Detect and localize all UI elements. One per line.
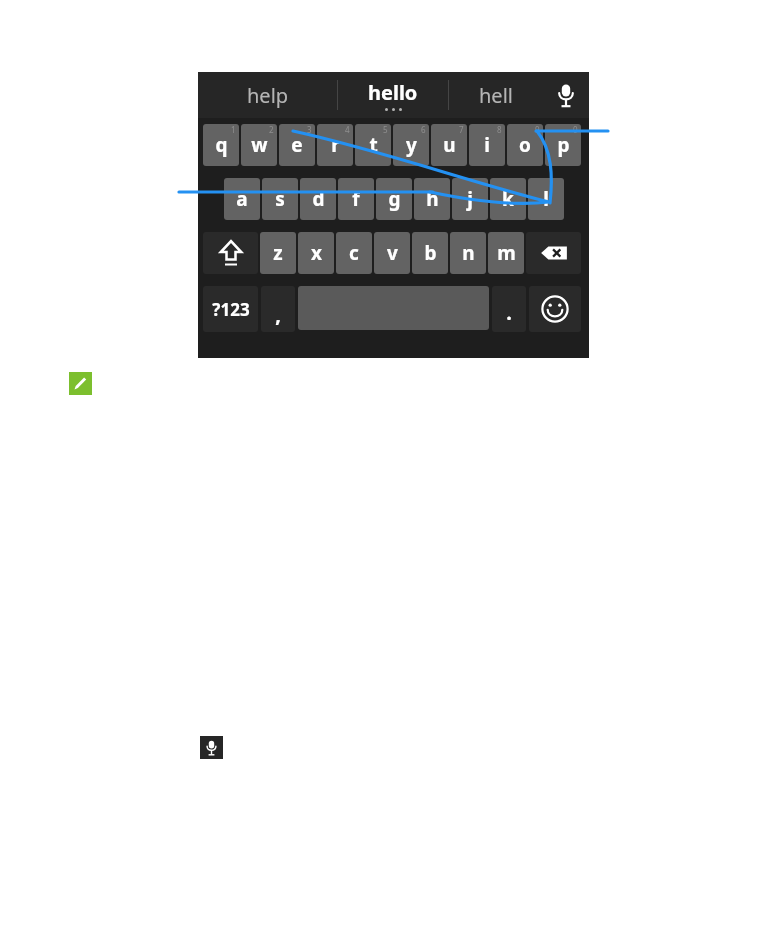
- staticText: n: [462, 240, 475, 266]
- button[interactable]: m: [488, 232, 524, 274]
- button[interactable]: hello: [338, 72, 448, 118]
- staticText: 1: [231, 124, 236, 135]
- staticText: h: [426, 186, 439, 212]
- button[interactable]: r: [317, 124, 353, 166]
- staticText: b: [424, 240, 437, 266]
- staticText: z: [273, 240, 283, 266]
- staticText: hell: [479, 82, 513, 109]
- button[interactable]: o: [507, 124, 543, 166]
- button[interactable]: Voice input: [200, 736, 223, 759]
- button[interactable]: .: [492, 286, 526, 332]
- button[interactable]: n: [450, 232, 486, 274]
- staticText: 9: [535, 124, 540, 135]
- button[interactable]: h: [414, 178, 450, 220]
- button[interactable]: y: [393, 124, 429, 166]
- staticText: v: [387, 240, 398, 266]
- staticText: hello: [368, 79, 418, 106]
- staticText: ,: [275, 301, 281, 328]
- button[interactable]: x: [298, 232, 334, 274]
- button[interactable]: ?123: [203, 286, 258, 332]
- button[interactable]: a: [224, 178, 260, 220]
- staticText: o: [519, 132, 531, 158]
- button[interactable]: Emoji: [529, 286, 581, 332]
- button[interactable]: f: [338, 178, 374, 220]
- staticText: s: [275, 186, 285, 212]
- button[interactable]: k: [490, 178, 526, 220]
- staticText: l: [543, 186, 549, 212]
- button[interactable]: q: [203, 124, 239, 166]
- staticText: c: [349, 240, 359, 266]
- button[interactable]: ,: [261, 286, 295, 332]
- button[interactable]: Edit: [69, 372, 92, 395]
- button[interactable]: u: [431, 124, 467, 166]
- button[interactable]: z: [260, 232, 296, 274]
- staticText: 4: [345, 124, 350, 135]
- staticText: x: [311, 240, 322, 266]
- staticText: d: [312, 186, 325, 212]
- staticText: .: [506, 299, 512, 326]
- staticText: e: [291, 132, 303, 158]
- staticText: 2: [269, 124, 274, 135]
- button[interactable]: l: [528, 178, 564, 220]
- staticText: t: [369, 132, 378, 158]
- button[interactable]: c: [336, 232, 372, 274]
- button[interactable]: g: [376, 178, 412, 220]
- button[interactable]: hell: [449, 72, 543, 118]
- staticText: g: [388, 186, 401, 212]
- staticText: q: [215, 132, 228, 158]
- staticText: f: [352, 186, 360, 212]
- staticText: p: [557, 132, 570, 158]
- staticText: m: [497, 240, 516, 266]
- staticText: r: [331, 132, 340, 158]
- button[interactable]: i: [469, 124, 505, 166]
- staticText: j: [467, 186, 473, 212]
- staticText: help: [247, 82, 289, 109]
- staticText: 0: [573, 124, 578, 135]
- staticText: 7: [459, 124, 464, 135]
- button[interactable]: help: [198, 72, 337, 118]
- button[interactable]: v: [374, 232, 410, 274]
- staticText: ?123: [212, 298, 250, 321]
- staticText: 8: [497, 124, 502, 135]
- staticText: 5: [383, 124, 388, 135]
- button[interactable]: w: [241, 124, 277, 166]
- button[interactable]: p: [545, 124, 581, 166]
- button[interactable]: b: [412, 232, 448, 274]
- staticText: w: [251, 132, 268, 158]
- button[interactable]: j: [452, 178, 488, 220]
- staticText: y: [406, 132, 417, 158]
- staticText: 6: [421, 124, 426, 135]
- button[interactable]: s: [262, 178, 298, 220]
- staticText: a: [236, 186, 248, 212]
- staticText: k: [502, 186, 514, 212]
- button[interactable]: Backspace: [526, 232, 581, 274]
- staticText: 3: [307, 124, 312, 135]
- button[interactable]: Voice input: [543, 72, 589, 118]
- staticText: i: [484, 132, 490, 158]
- button[interactable]: Shift: [203, 232, 258, 274]
- button[interactable]: t: [355, 124, 391, 166]
- button[interactable]: d: [300, 178, 336, 220]
- staticText: u: [443, 132, 456, 158]
- button[interactable]: e: [279, 124, 315, 166]
